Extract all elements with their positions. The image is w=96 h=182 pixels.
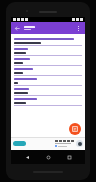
button[interactable] [14,76,82,86]
button[interactable]: Back [22,152,32,162]
button[interactable] [14,46,82,56]
button[interactable]: More options [74,24,83,33]
button[interactable] [14,36,82,46]
button[interactable] [14,66,82,76]
button[interactable]: Add [69,123,81,135]
button[interactable] [14,96,82,106]
button[interactable]: Back [13,24,22,33]
button[interactable] [14,56,82,66]
button[interactable] [14,86,82,96]
button[interactable]: Recent apps [64,152,74,162]
button[interactable]: Install [13,141,26,146]
button[interactable]: Home [43,152,53,162]
